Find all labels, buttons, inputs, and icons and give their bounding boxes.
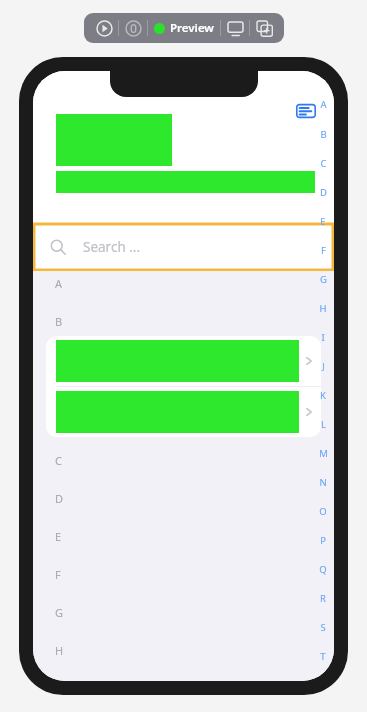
- button[interactable]: Q: [312, 555, 334, 584]
- button[interactable]: [46, 336, 321, 386]
- button[interactable]: D: [312, 178, 334, 207]
- staticText: H: [55, 643, 64, 657]
- button[interactable]: B: [312, 119, 334, 149]
- button[interactable]: L: [312, 410, 334, 439]
- staticText: G: [320, 273, 327, 286]
- button[interactable]: T: [312, 642, 334, 671]
- staticText: D: [320, 186, 327, 199]
- button[interactable]: P: [312, 526, 334, 555]
- staticText: Q: [319, 563, 327, 576]
- button[interactable]: H: [312, 294, 334, 323]
- button[interactable]: C: [312, 149, 334, 178]
- button[interactable]: N: [312, 468, 334, 497]
- button[interactable]: Device settings: [119, 14, 147, 42]
- staticText: J: [322, 360, 325, 373]
- staticText: F: [55, 567, 61, 581]
- staticText: T: [320, 650, 326, 663]
- staticText: A: [320, 98, 327, 111]
- button[interactable]: I: [312, 323, 334, 352]
- staticText: R: [320, 592, 326, 605]
- staticText: L: [321, 418, 326, 431]
- staticText: D: [55, 491, 64, 505]
- button[interactable]: Duplicate preview: [250, 14, 278, 42]
- button[interactable]: A: [312, 89, 334, 119]
- staticText: M: [319, 447, 328, 460]
- button[interactable]: Preview: [148, 20, 220, 36]
- button[interactable]: J: [312, 352, 334, 381]
- button[interactable]: S: [312, 613, 334, 642]
- staticText: B: [55, 314, 63, 328]
- button[interactable]: F: [312, 236, 334, 265]
- button[interactable]: Open in device: [221, 14, 249, 42]
- staticText: I: [321, 331, 325, 344]
- staticText: K: [320, 389, 326, 402]
- staticText: Preview: [170, 20, 214, 36]
- button[interactable]: G: [312, 265, 334, 294]
- staticText: N: [319, 476, 327, 489]
- staticText: A: [55, 276, 63, 290]
- staticText: E: [55, 529, 62, 543]
- button[interactable]: E: [312, 207, 334, 236]
- staticText: C: [320, 157, 327, 170]
- staticText: G: [55, 605, 64, 619]
- staticText: B: [320, 128, 327, 141]
- staticText: S: [320, 621, 326, 634]
- staticText: C: [55, 453, 62, 467]
- staticText: H: [319, 302, 327, 315]
- staticText: Search ...: [83, 238, 141, 256]
- button[interactable]: Search ...: [33, 223, 334, 271]
- button[interactable]: Run preview: [90, 14, 118, 42]
- button[interactable]: O: [312, 497, 334, 526]
- button[interactable]: R: [312, 584, 334, 613]
- staticText: F: [321, 244, 326, 257]
- button[interactable]: [46, 387, 321, 437]
- staticText: O: [319, 505, 327, 518]
- button[interactable]: K: [312, 381, 334, 410]
- staticText: E: [320, 215, 326, 228]
- staticText: P: [320, 534, 326, 547]
- button[interactable]: M: [312, 439, 334, 468]
- button[interactable]: Cards: [292, 97, 320, 125]
